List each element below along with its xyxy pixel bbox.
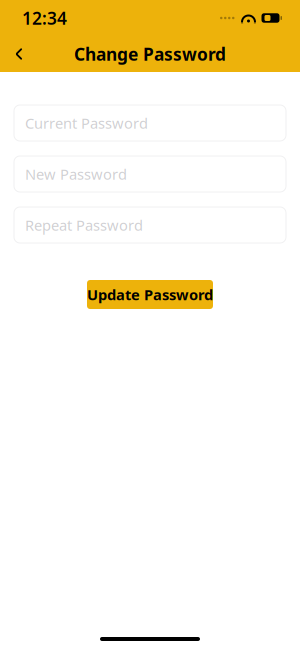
button[interactable]: Back: [0, 36, 38, 72]
staticText: Change Password: [74, 42, 226, 65]
staticText: 12:34: [22, 6, 67, 29]
staticText: Repeat Password: [25, 215, 143, 235]
staticText: Update Password: [87, 285, 213, 304]
button[interactable]: Update Password: [87, 280, 213, 309]
staticText: New Password: [25, 164, 127, 184]
staticText: Current Password: [25, 113, 148, 133]
